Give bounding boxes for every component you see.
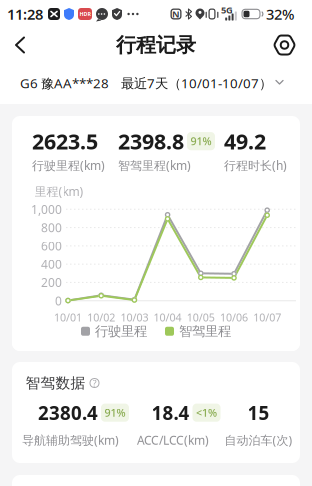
staticText: 400 bbox=[41, 256, 62, 272]
staticText: 0 bbox=[55, 293, 62, 309]
staticText: 自动泊车(次) bbox=[224, 432, 292, 448]
staticText: HDR bbox=[79, 10, 90, 18]
staticText: 18.4 bbox=[151, 400, 189, 425]
button[interactable]: Settings bbox=[274, 27, 312, 62]
staticText: 10/04 bbox=[154, 310, 182, 324]
button[interactable]: Back bbox=[0, 27, 25, 62]
staticText: 里程(km) bbox=[34, 183, 83, 199]
staticText: 10/07 bbox=[253, 310, 281, 324]
staticText: 600 bbox=[41, 238, 62, 254]
staticText: 10/06 bbox=[220, 310, 248, 324]
staticText: 800 bbox=[41, 220, 62, 235]
staticText: 200 bbox=[41, 274, 62, 290]
staticText: 10/01 bbox=[54, 310, 82, 324]
staticText: 5G bbox=[221, 4, 233, 16]
staticText: 2623.5 bbox=[32, 127, 98, 155]
staticText: 91% bbox=[190, 134, 211, 148]
staticText: 10/05 bbox=[187, 310, 215, 324]
staticText: ACC/LCC(km) bbox=[137, 432, 209, 448]
staticText: <1% bbox=[196, 406, 217, 420]
staticText: 行程记录 bbox=[116, 33, 196, 57]
staticText: 2398.8 bbox=[118, 127, 184, 155]
staticText: 11:28 bbox=[7, 4, 43, 24]
staticText: 智驾里程(km) bbox=[118, 157, 191, 173]
staticText: 49.2 bbox=[224, 127, 266, 155]
staticText: 行程时长(h) bbox=[224, 157, 287, 173]
button[interactable]: G6 豫AA***28 bbox=[0, 62, 109, 104]
staticText: 智驾数据 bbox=[25, 374, 85, 392]
staticText: N bbox=[172, 8, 180, 20]
staticText: 2380.4 bbox=[38, 400, 98, 425]
staticText: ? bbox=[92, 377, 96, 389]
staticText: 行驶里程 bbox=[95, 323, 147, 339]
button[interactable]: 智驾数据说明 bbox=[89, 378, 99, 388]
button[interactable]: 最近7天（10/01-10/07） bbox=[121, 62, 312, 104]
staticText: 智驾里程 bbox=[179, 323, 231, 339]
staticText: G6 豫AA***28 bbox=[20, 74, 109, 92]
staticText: 导航辅助驾驶(km) bbox=[22, 432, 119, 448]
staticText: 行驶里程(km) bbox=[32, 157, 105, 173]
staticText: 91% bbox=[104, 406, 125, 420]
staticText: 10/03 bbox=[120, 310, 148, 324]
staticText: 最近7天（10/01-10/07） bbox=[121, 74, 272, 92]
staticText: 15 bbox=[247, 400, 269, 425]
staticText: 32% bbox=[266, 4, 294, 24]
staticText: 1,000 bbox=[31, 201, 62, 217]
staticText: 10/02 bbox=[87, 310, 115, 324]
